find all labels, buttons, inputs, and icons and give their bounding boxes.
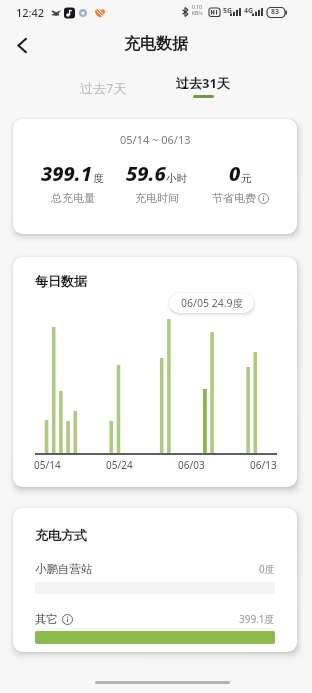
staticText: 4G bbox=[244, 6, 254, 16]
button[interactable]: 小鹏自营站 bbox=[35, 562, 275, 576]
staticText: 83 bbox=[271, 7, 280, 17]
staticText: KB/s bbox=[192, 10, 203, 17]
button[interactable]: 06/05 24.9度 bbox=[169, 293, 254, 313]
staticText: 过去7天 bbox=[80, 79, 127, 97]
button[interactable]: 过去7天 bbox=[66, 74, 141, 102]
staticText: 其它 bbox=[35, 612, 58, 626]
staticText: 充电数据 bbox=[124, 34, 188, 54]
staticText: 小时 bbox=[166, 172, 187, 185]
staticText: 0.10 bbox=[192, 4, 202, 11]
staticText: 0 bbox=[229, 160, 241, 187]
staticText: 充电方式 bbox=[35, 527, 87, 543]
button[interactable]: 过去31天 bbox=[163, 74, 243, 106]
staticText: 12:42 bbox=[16, 5, 45, 20]
staticText: 05/24 bbox=[106, 458, 133, 472]
staticText: 5G bbox=[223, 6, 233, 16]
button[interactable] bbox=[8, 32, 36, 58]
button[interactable]: 其它 bbox=[35, 612, 275, 626]
staticText: 399.1度 bbox=[239, 612, 275, 626]
staticText: 399.1 bbox=[41, 160, 93, 187]
staticText: 度 bbox=[93, 172, 104, 185]
staticText: 05/14 ~ 06/13 bbox=[120, 132, 191, 147]
staticText: 过去31天 bbox=[176, 74, 230, 92]
staticText: 0度 bbox=[259, 562, 275, 576]
staticText: 06/03 bbox=[178, 458, 205, 472]
staticText: 节省电费 bbox=[212, 191, 256, 205]
staticText: 06/13 bbox=[250, 458, 277, 472]
staticText: 05/14 bbox=[34, 458, 61, 472]
staticText: 元 bbox=[241, 172, 252, 185]
staticText: 小鹏自营站 bbox=[35, 562, 93, 576]
staticText: 总充电量 bbox=[51, 191, 95, 205]
staticText: 每日数据 bbox=[35, 273, 87, 289]
staticText: 06/05 24.9度 bbox=[181, 296, 243, 310]
staticText: 充电时间 bbox=[135, 191, 179, 205]
staticText: 59.6 bbox=[126, 160, 166, 187]
